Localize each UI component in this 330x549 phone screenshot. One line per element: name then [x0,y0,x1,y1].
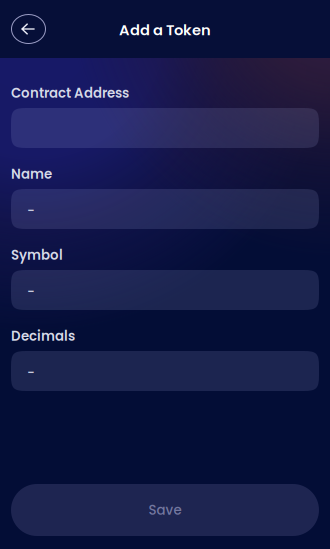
staticText: Save [148,501,181,519]
button[interactable]: Back [11,14,46,44]
staticText: - [27,364,35,382]
staticText: Decimals [11,327,75,345]
staticText: Add a Token [119,20,211,40]
staticText: Name [11,165,52,183]
staticText: - [27,283,35,301]
staticText: - [27,202,35,220]
staticText: Contract Address [11,84,129,102]
staticText: Symbol [11,246,63,264]
button[interactable]: Save [11,484,319,536]
